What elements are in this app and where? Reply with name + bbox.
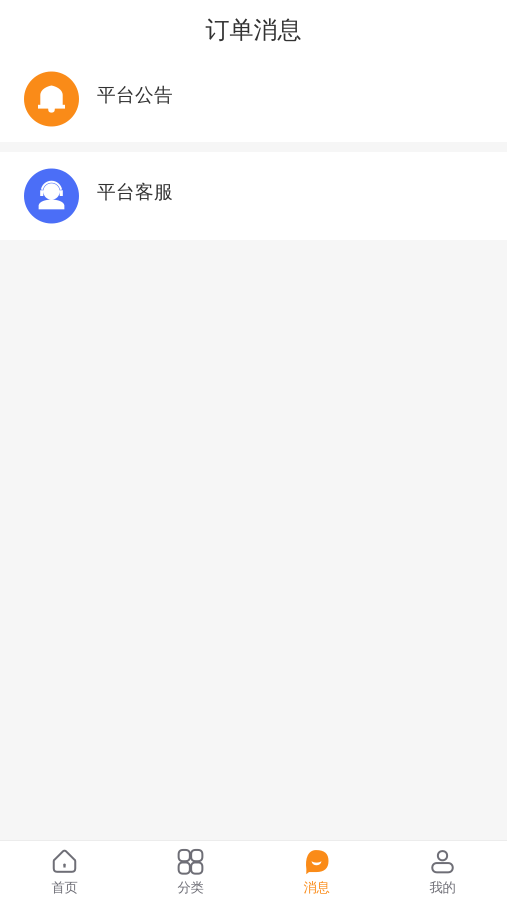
staticText: 订单消息: [205, 15, 301, 45]
staticText: 分类: [177, 879, 203, 896]
staticText: 首页: [51, 879, 77, 896]
button[interactable]: 平台公告: [0, 56, 507, 142]
staticText: 平台客服: [97, 180, 173, 203]
staticText: 平台公告: [97, 83, 173, 106]
button[interactable]: 平台客服: [0, 152, 507, 240]
button[interactable]: 分类: [127, 840, 253, 899]
staticText: 我的: [429, 879, 455, 896]
staticText: 消息: [303, 879, 329, 896]
button[interactable]: 消息: [253, 840, 379, 899]
button[interactable]: 首页: [1, 840, 127, 899]
button[interactable]: 我的: [379, 840, 505, 899]
